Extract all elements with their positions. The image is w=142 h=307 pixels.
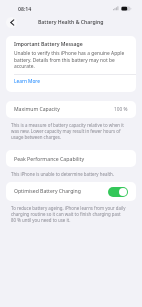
staticText: This iPhone is unable to determine batte…	[11, 171, 115, 177]
staticText: Learn More	[14, 78, 40, 85]
button[interactable]: Back	[6, 17, 17, 28]
button[interactable]: Optimised Battery Charging	[6, 182, 136, 201]
staticText: Unable to verify this iPhone has a genui…	[14, 50, 125, 69]
staticText: Peak Performance Capability	[14, 155, 85, 162]
button[interactable]: Peak Performance Capability	[6, 150, 136, 167]
staticText: Battery Health & Charging	[38, 19, 104, 26]
staticText: This is a measure of battery capacity re…	[11, 122, 124, 140]
staticText: 08:14	[18, 5, 32, 12]
staticText: 100 %	[114, 106, 128, 113]
staticText: Maximum Capacity	[14, 106, 60, 113]
button[interactable]: Optimised Battery Charging	[108, 187, 128, 197]
button[interactable]: Maximum Capacity	[6, 101, 136, 118]
staticText: Important Battery Message	[14, 41, 83, 48]
button[interactable]: Learn More	[14, 75, 136, 92]
staticText: To reduce battery ageing, iPhone learns …	[11, 205, 126, 223]
staticText: Optimised Battery Charging	[14, 188, 81, 195]
